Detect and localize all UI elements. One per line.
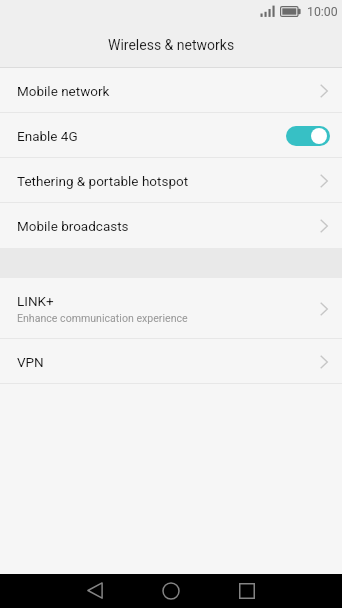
staticText: Mobile broadcasts: [17, 218, 129, 234]
staticText: 10:00: [307, 5, 338, 19]
button[interactable]: Home: [147, 574, 195, 608]
button[interactable]: Mobile broadcasts: [0, 203, 342, 248]
staticText: Enable 4G: [17, 128, 284, 144]
button[interactable]: Enable 4G: [0, 113, 342, 158]
staticText: Wireless & networks: [108, 37, 235, 53]
staticText: Enhance communication experience: [17, 312, 188, 324]
button[interactable]: VPN: [0, 339, 342, 384]
button[interactable]: Back: [71, 574, 119, 608]
staticText: LINK+: [17, 293, 54, 309]
button[interactable]: Recents: [223, 574, 271, 608]
button[interactable]: Mobile network: [0, 68, 342, 113]
button[interactable]: LINK+: [0, 278, 342, 339]
staticText: Mobile network: [17, 83, 110, 99]
button[interactable]: Tethering & portable hotspot: [0, 158, 342, 203]
staticText: VPN: [17, 354, 44, 370]
staticText: Tethering & portable hotspot: [17, 173, 189, 189]
